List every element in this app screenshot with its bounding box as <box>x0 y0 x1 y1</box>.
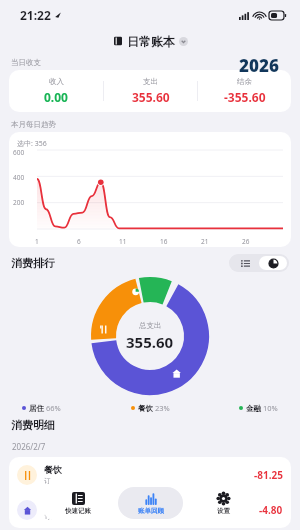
button[interactable]: List view <box>231 256 259 270</box>
staticText: 355.60 <box>126 332 174 352</box>
staticText: -355.60 <box>224 89 266 105</box>
staticText: 66% <box>46 403 61 413</box>
staticText: 选中: 356 <box>17 139 47 149</box>
button[interactable]: 快速记账 <box>45 487 110 519</box>
staticText: 餐饮 <box>138 404 153 413</box>
staticText: 23% <box>155 403 170 413</box>
staticText: 消费排行 <box>11 256 55 270</box>
staticText: 账单回顾 <box>138 507 164 515</box>
staticText: 600 <box>13 148 25 157</box>
staticText: 1 <box>35 237 39 246</box>
staticText: 355.60 <box>132 89 170 105</box>
button[interactable]: Pie chart view <box>259 256 287 270</box>
staticText: 消费明细 <box>11 418 55 432</box>
button[interactable]: 餐饮 <box>9 457 291 492</box>
staticText: 21:22 <box>20 7 51 23</box>
staticText: 200 <box>13 198 25 207</box>
staticText: 6 <box>77 237 81 246</box>
staticText: 0.00 <box>44 89 68 105</box>
staticText: 2026/2/7 <box>12 441 46 452</box>
staticText: 结余 <box>237 77 252 86</box>
staticText: 本月每日趋势 <box>11 120 56 129</box>
staticText: 支出 <box>143 77 158 86</box>
staticText: 餐饮 <box>44 464 62 475</box>
staticText: 订 <box>44 477 51 485</box>
staticText: 总支出 <box>139 321 162 330</box>
staticText: 日常账本 <box>127 34 175 49</box>
staticText: 1月电费自动缴费·*球鞋·腾讯买菜花*·租 赁每期出… <box>44 512 191 521</box>
button[interactable]: 日常账本 <box>0 30 300 52</box>
staticText: 400 <box>13 173 25 182</box>
staticText: 10% <box>263 403 278 413</box>
staticText: 居住 <box>29 404 44 413</box>
staticText: -81.25 <box>254 468 283 482</box>
staticText: -4.80 <box>259 503 283 517</box>
staticText: 16 <box>160 237 168 246</box>
staticText: 当日收支 <box>11 58 41 67</box>
staticText: 金融 <box>246 404 261 413</box>
staticText: 11 <box>119 237 127 246</box>
button[interactable]: 设置 <box>191 487 256 519</box>
staticText: 21 <box>201 237 209 246</box>
staticText: 2026 <box>239 54 279 77</box>
staticText: 设置 <box>217 507 230 515</box>
staticText: 26 <box>242 237 250 246</box>
staticText: 收入 <box>49 77 64 86</box>
staticText: 快速记账 <box>65 507 91 515</box>
button[interactable]: 居住 <box>9 492 291 528</box>
button[interactable]: 账单回顾 <box>118 487 183 519</box>
